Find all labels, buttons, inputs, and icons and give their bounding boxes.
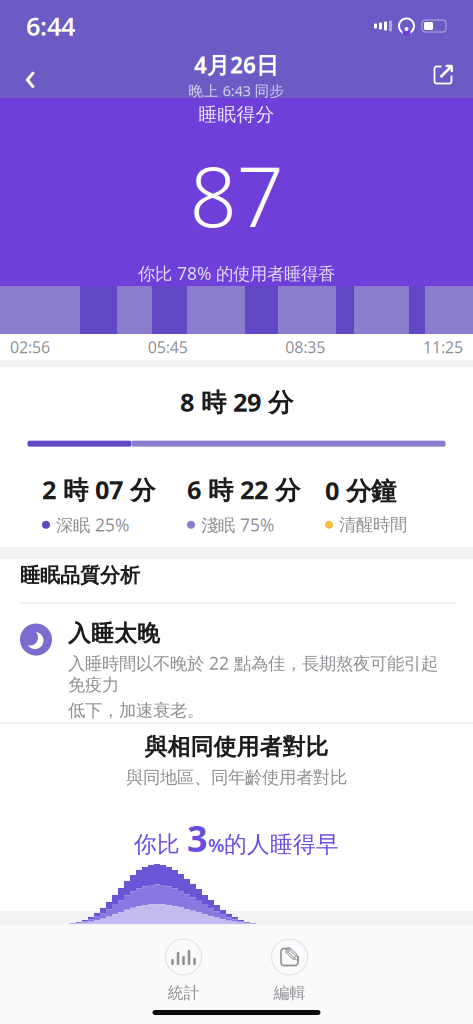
staticText: ↗ [436,59,455,85]
button[interactable]: 統計 [141,935,225,1007]
staticText: 你比 [134,831,187,858]
staticText: 晚上 6:43 同步 [188,81,284,100]
staticText: 睡眠品質分析 [20,563,140,588]
button[interactable]: 分享 [421,53,465,97]
staticText: 的人睡得早 [224,831,339,858]
staticText: % [208,832,224,857]
button[interactable]: 返回 [8,53,52,97]
staticText: 低下，加速衰老。 [68,700,204,721]
staticText: 6:44 [26,9,75,43]
staticText: 6 時 22 分 [187,473,300,506]
staticText: 入睡時間以不晚於 22 點為佳，長期熬夜可能引起免疫力 [68,651,438,696]
staticText: ✎ [283,943,301,967]
button[interactable]: ✎ [247,935,331,1007]
staticText: 02:56 [10,336,50,358]
staticText: 11:25 [423,336,463,358]
staticText: 與同地區、同年齡使用者對比 [126,767,347,788]
staticText: 4月26日 [194,50,279,80]
staticText: 2 時 07 分 [42,473,155,506]
staticText: ‹ [24,48,36,101]
staticText: 87 [189,140,283,250]
staticText: 睡眠得分 [198,103,274,126]
staticText: 編輯 [273,983,305,1003]
staticText: 清醒時間 [339,514,407,535]
staticText: 05:45 [148,336,188,358]
staticText: 0 分鐘 [325,473,396,507]
staticText: 3 [187,814,208,862]
staticText: 淺眠 75% [201,513,274,536]
button[interactable]: 入睡太晚 [0,604,473,735]
staticText: 你比 78% 的使用者睡得香 [138,262,335,285]
staticText: 與相同使用者對比 [144,733,328,761]
staticText: 深眠 25% [56,513,129,536]
staticText: 入睡太晚 [68,620,160,647]
staticText: 8 時 29 分 [180,385,293,419]
staticText: 統計 [167,983,199,1003]
staticText: 08:35 [285,336,325,358]
